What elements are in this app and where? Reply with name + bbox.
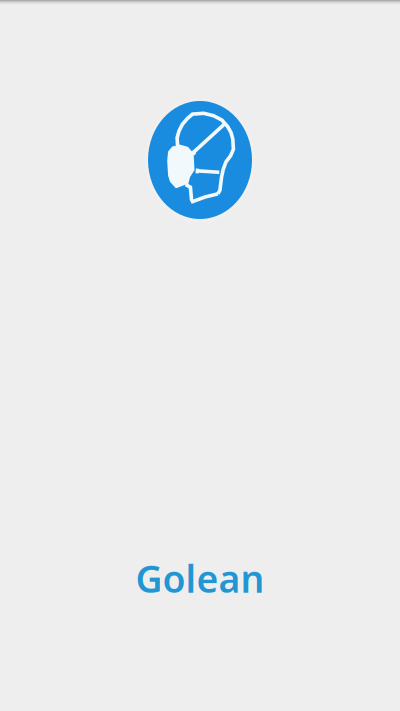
staticText: Golean — [135, 553, 264, 603]
